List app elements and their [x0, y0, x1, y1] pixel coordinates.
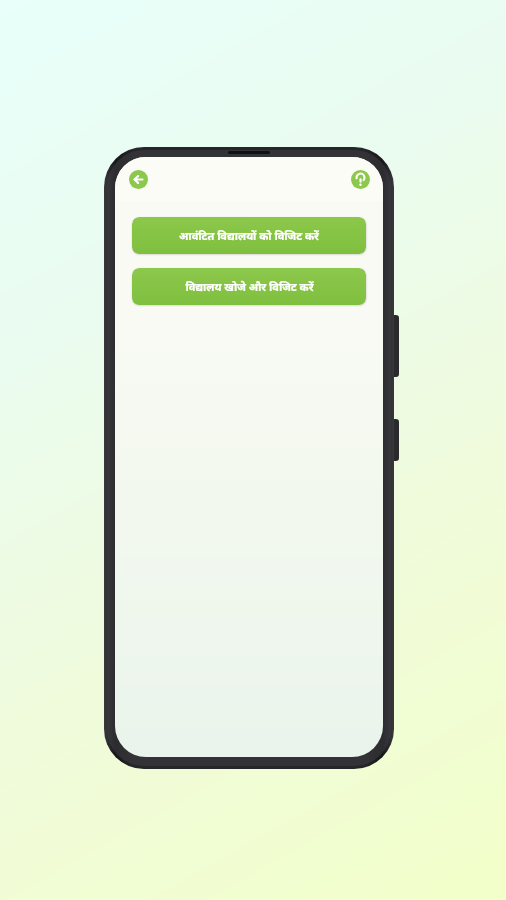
- button[interactable]: आवंटित विद्यालयों को विजिट करें: [132, 217, 366, 254]
- button[interactable]: विद्यालय खोजे और विजिट करें: [132, 268, 366, 305]
- button[interactable]: Help: [345, 164, 375, 194]
- staticText: आवंटित विद्यालयों को विजिट करें: [179, 228, 319, 243]
- staticText: विद्यालय खोजे और विजिट करें: [185, 279, 314, 294]
- button[interactable]: Back: [123, 164, 153, 194]
